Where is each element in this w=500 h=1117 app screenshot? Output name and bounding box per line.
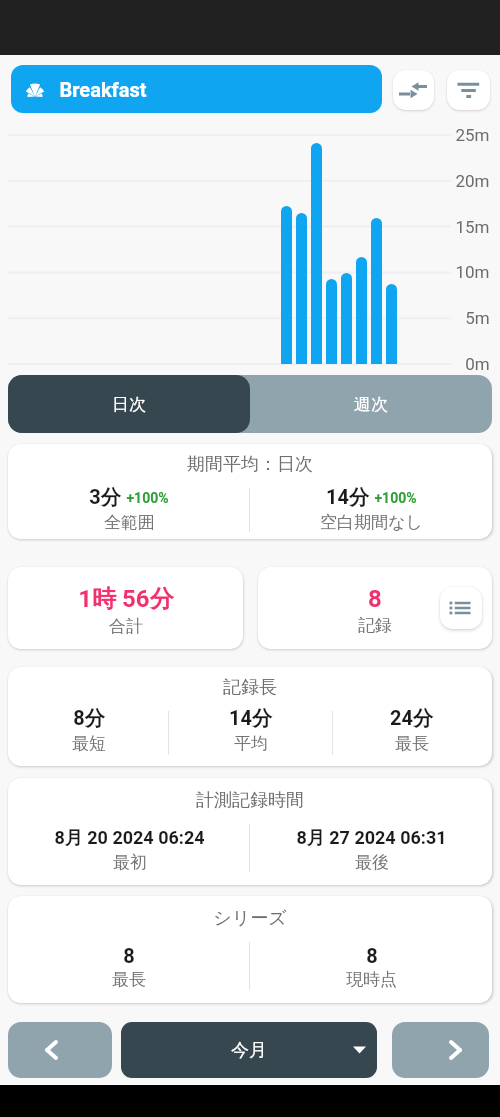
staticText: 3分 (89, 485, 121, 510)
staticText: 計測記録時間 (196, 789, 304, 812)
staticText: 最後 (355, 852, 389, 873)
staticText: 週次 (354, 394, 388, 415)
staticText: 全範囲 (104, 512, 155, 533)
staticText: 最短 (72, 733, 106, 754)
button[interactable] (447, 70, 490, 110)
staticText: 24分 (390, 706, 433, 731)
staticText: 日次 (112, 394, 146, 415)
staticText: 空白期間なし (320, 512, 423, 533)
staticText: 14分 (229, 706, 272, 731)
staticText: +100% (126, 490, 169, 506)
staticText: 最初 (113, 852, 147, 873)
staticText: 最長 (395, 733, 429, 754)
staticText: Breakfast (59, 78, 147, 101)
staticText: 合計 (109, 616, 143, 637)
staticText: 期間平均：日次 (187, 453, 313, 476)
staticText: 8分 (73, 706, 105, 731)
staticText: +100% (374, 490, 417, 506)
button[interactable] (8, 1022, 112, 1078)
staticText: 14分 (326, 485, 369, 510)
button[interactable]: 週次 (250, 375, 492, 433)
staticText: 記録 (358, 615, 392, 636)
staticText: シリーズ (213, 907, 287, 930)
button[interactable] (393, 70, 434, 110)
staticText: 平均 (234, 733, 268, 754)
staticText: 8月 27 2024 06:31 (296, 827, 447, 850)
button[interactable]: 日次 (8, 375, 250, 433)
button[interactable]: 今月 (121, 1022, 377, 1078)
staticText: 最長 (112, 969, 146, 990)
staticText: 8 (368, 585, 382, 613)
staticText: 記録長 (223, 676, 277, 699)
staticText: 8 (366, 944, 378, 967)
staticText: 今月 (231, 1039, 267, 1062)
button[interactable]: Breakfast (11, 65, 382, 113)
staticText: 5m (465, 308, 490, 328)
staticText: 8月 20 2024 06:24 (54, 827, 205, 850)
staticText: 25m (455, 125, 490, 145)
button[interactable] (392, 1022, 489, 1078)
button[interactable] (440, 587, 482, 629)
staticText: 0m (465, 354, 490, 374)
staticText: 現時点 (346, 969, 397, 990)
staticText: 8 (123, 944, 135, 967)
staticText: 1時 56分 (78, 584, 174, 614)
staticText: 20m (455, 171, 490, 191)
staticText: 10m (455, 262, 490, 282)
staticText: 15m (455, 217, 490, 237)
